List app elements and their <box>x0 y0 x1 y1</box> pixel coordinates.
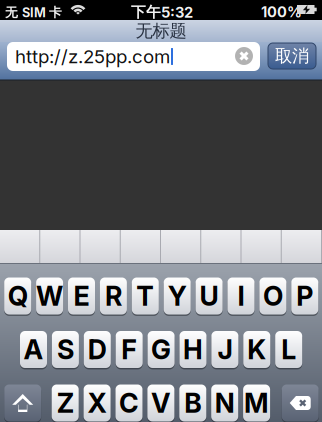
button[interactable]: W <box>36 276 63 315</box>
button[interactable]: G <box>148 330 175 369</box>
button[interactable]: Suggestion <box>282 230 322 263</box>
staticText: C <box>119 387 139 419</box>
button[interactable]: 取消 <box>268 43 316 69</box>
staticText: L <box>281 333 296 366</box>
button[interactable]: Y <box>164 276 191 315</box>
button[interactable]: M <box>243 383 270 422</box>
button[interactable]: S <box>52 330 79 369</box>
button[interactable]: P <box>291 276 318 315</box>
button[interactable]: Suggestion <box>201 230 241 263</box>
button[interactable]: Z <box>52 383 79 422</box>
staticText: J <box>217 333 232 366</box>
button[interactable]: K <box>243 330 270 369</box>
button[interactable]: E <box>68 276 95 315</box>
staticText: B <box>184 387 201 419</box>
staticText: W <box>36 280 63 312</box>
staticText: 无标题 <box>135 20 186 42</box>
button[interactable]: Suggestion <box>241 230 282 263</box>
button[interactable]: D <box>84 330 111 369</box>
staticText: 下午5:32 <box>131 3 193 21</box>
staticText: I <box>237 280 244 312</box>
button[interactable]: Shift <box>4 384 41 421</box>
staticText: V <box>151 387 171 419</box>
button[interactable]: R <box>100 276 127 315</box>
button[interactable]: Suggestion <box>161 230 201 263</box>
button[interactable]: A <box>20 330 47 369</box>
staticText: Z <box>57 387 74 419</box>
button[interactable]: X <box>84 383 111 422</box>
button[interactable]: U <box>196 276 223 315</box>
button[interactable]: H <box>179 330 206 369</box>
button[interactable]: Delete <box>282 384 319 421</box>
staticText: D <box>88 333 107 366</box>
staticText: T <box>136 280 154 312</box>
staticText: 无 SIM 卡 <box>5 4 62 20</box>
button[interactable]: B <box>179 383 206 422</box>
staticText: Q <box>8 280 28 312</box>
button[interactable]: F <box>116 330 143 369</box>
staticText: U <box>200 280 219 312</box>
button[interactable]: Suggestion <box>0 230 40 263</box>
staticText: F <box>121 333 137 366</box>
button[interactable]: Suggestion <box>80 230 121 263</box>
button[interactable]: J <box>211 330 238 369</box>
button[interactable]: N <box>211 383 238 422</box>
button[interactable]: Clear text <box>235 47 253 65</box>
staticText: G <box>151 333 171 366</box>
button[interactable]: O <box>259 276 286 315</box>
staticText: 取消 <box>275 45 309 67</box>
button[interactable]: C <box>115 383 142 422</box>
staticText: R <box>105 280 122 312</box>
staticText: X <box>88 387 107 419</box>
staticText: S <box>57 333 74 366</box>
staticText: http://z.25pp.com <box>15 45 170 68</box>
staticText: H <box>183 333 203 366</box>
button[interactable]: Q <box>4 276 31 315</box>
button[interactable]: I <box>227 276 254 315</box>
button[interactable]: T <box>132 276 159 315</box>
button[interactable]: Suggestion <box>40 230 80 263</box>
staticText: Y <box>168 280 187 312</box>
staticText: A <box>23 333 43 366</box>
staticText: M <box>244 387 269 419</box>
staticText: N <box>215 387 235 419</box>
button[interactable]: L <box>275 330 302 369</box>
staticText: 100% <box>261 3 302 21</box>
staticText: K <box>247 333 266 366</box>
button[interactable]: Suggestion <box>121 230 161 263</box>
button[interactable]: V <box>147 383 174 422</box>
staticText: E <box>73 280 89 312</box>
staticText: P <box>296 280 313 312</box>
staticText: O <box>263 280 283 312</box>
